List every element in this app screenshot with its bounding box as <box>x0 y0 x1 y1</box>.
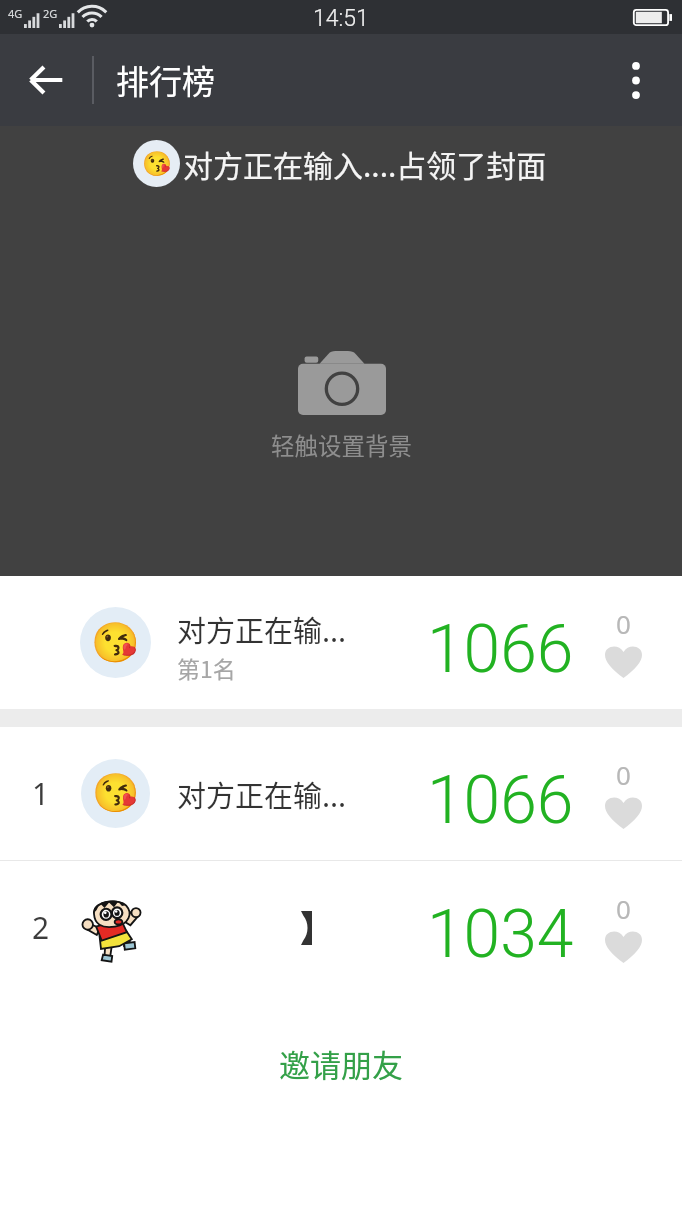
staticText: 第1名 <box>177 651 236 684</box>
button[interactable]: Like <box>605 757 642 829</box>
button[interactable]: 2 <box>0 861 682 994</box>
staticText: 2 <box>32 907 50 948</box>
button[interactable]: 邀请朋友 <box>0 1032 682 1094</box>
button[interactable]: 1 <box>0 727 682 860</box>
staticText: 轻触设置背景 <box>271 428 412 462</box>
staticText: 😘 <box>91 620 140 666</box>
staticText: 1066 <box>427 611 574 688</box>
staticText: 邀请朋友 <box>279 1041 403 1086</box>
staticText: 0 <box>616 757 631 792</box>
staticText: 1 <box>32 773 50 814</box>
staticText: 排行榜 <box>116 56 215 104</box>
staticText: 1034 <box>427 896 574 973</box>
staticText: 对方正在输... <box>177 773 347 815</box>
staticText: 😘 <box>92 771 140 816</box>
button[interactable]: Like <box>605 606 642 678</box>
button[interactable]: More options <box>590 34 682 126</box>
staticText: 4G <box>8 6 23 21</box>
staticText: 0 <box>616 606 631 641</box>
staticText: 对方正在输... <box>177 608 347 650</box>
staticText: 1066 <box>427 762 574 839</box>
staticText: 2G <box>43 6 58 21</box>
button[interactable]: 😘 <box>0 576 682 709</box>
staticText: 14:51 <box>313 5 369 32</box>
button[interactable]: 轻触设置背景 <box>271 351 412 462</box>
staticText: 😘 <box>142 150 172 178</box>
button[interactable]: Like <box>605 891 642 963</box>
staticText: 对方正在输入....占领了封面 <box>183 142 547 185</box>
button[interactable]: Back <box>0 34 92 126</box>
staticText: 0 <box>616 891 631 926</box>
